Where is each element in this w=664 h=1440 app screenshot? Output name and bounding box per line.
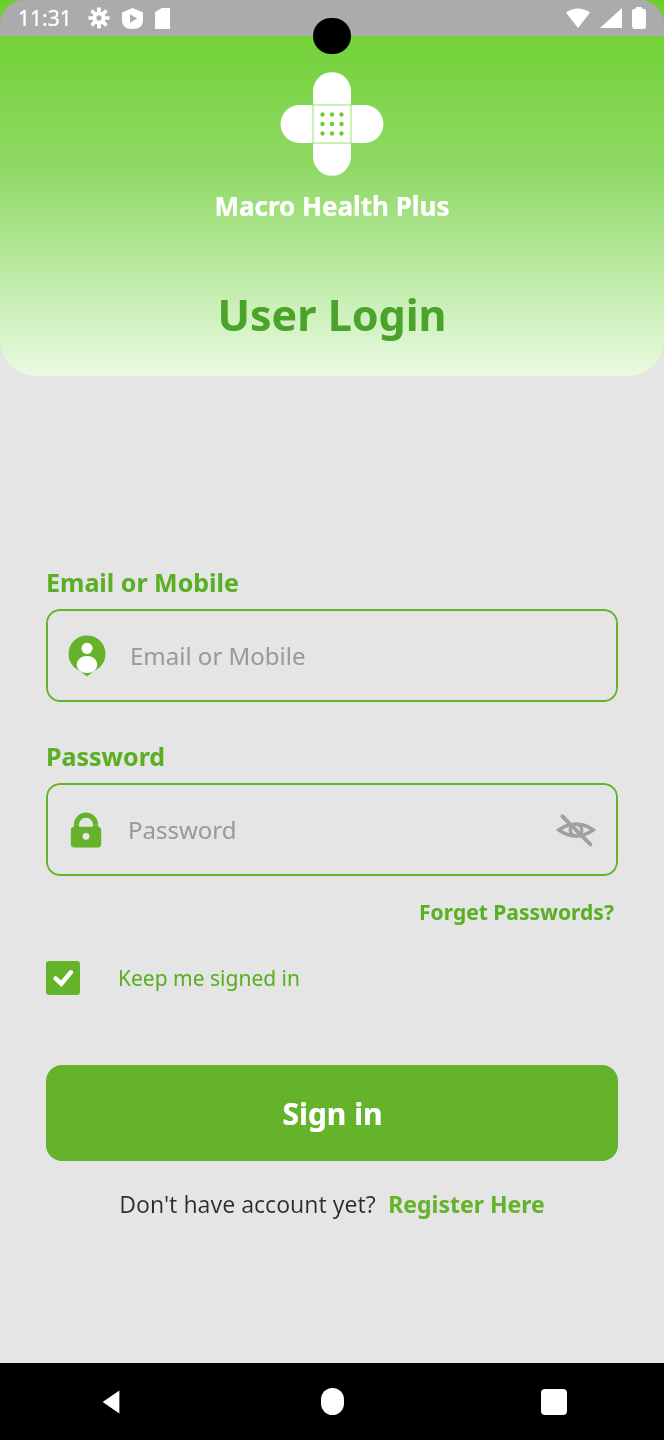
button[interactable]: Back bbox=[0, 1363, 222, 1440]
staticText: Email or Mobile bbox=[130, 639, 306, 672]
staticText: 11:31 bbox=[18, 4, 72, 33]
staticText: Macro Health Plus bbox=[214, 188, 450, 223]
staticText: Password bbox=[46, 739, 166, 773]
staticText: Email or Mobile bbox=[46, 565, 239, 599]
staticText: Keep me signed in bbox=[118, 964, 300, 993]
button[interactable]: Register Here bbox=[388, 1188, 545, 1219]
staticText: Password bbox=[128, 813, 237, 846]
staticText: Register Here bbox=[388, 1188, 545, 1219]
staticText: Don't have account yet? bbox=[119, 1188, 376, 1219]
button[interactable]: Password bbox=[46, 783, 618, 876]
button[interactable]: Show password bbox=[554, 808, 598, 852]
button[interactable]: Email or Mobile bbox=[46, 609, 618, 702]
button[interactable]: Recent apps bbox=[443, 1363, 664, 1440]
staticText: Forget Passwords? bbox=[419, 898, 614, 927]
staticText: User Login bbox=[217, 285, 447, 344]
button[interactable]: Keep me signed in bbox=[46, 961, 300, 995]
button[interactable]: Home bbox=[222, 1363, 443, 1440]
button[interactable]: Forget Passwords? bbox=[415, 894, 618, 931]
button[interactable]: Sign in bbox=[46, 1065, 618, 1161]
staticText: Sign in bbox=[282, 1093, 383, 1134]
